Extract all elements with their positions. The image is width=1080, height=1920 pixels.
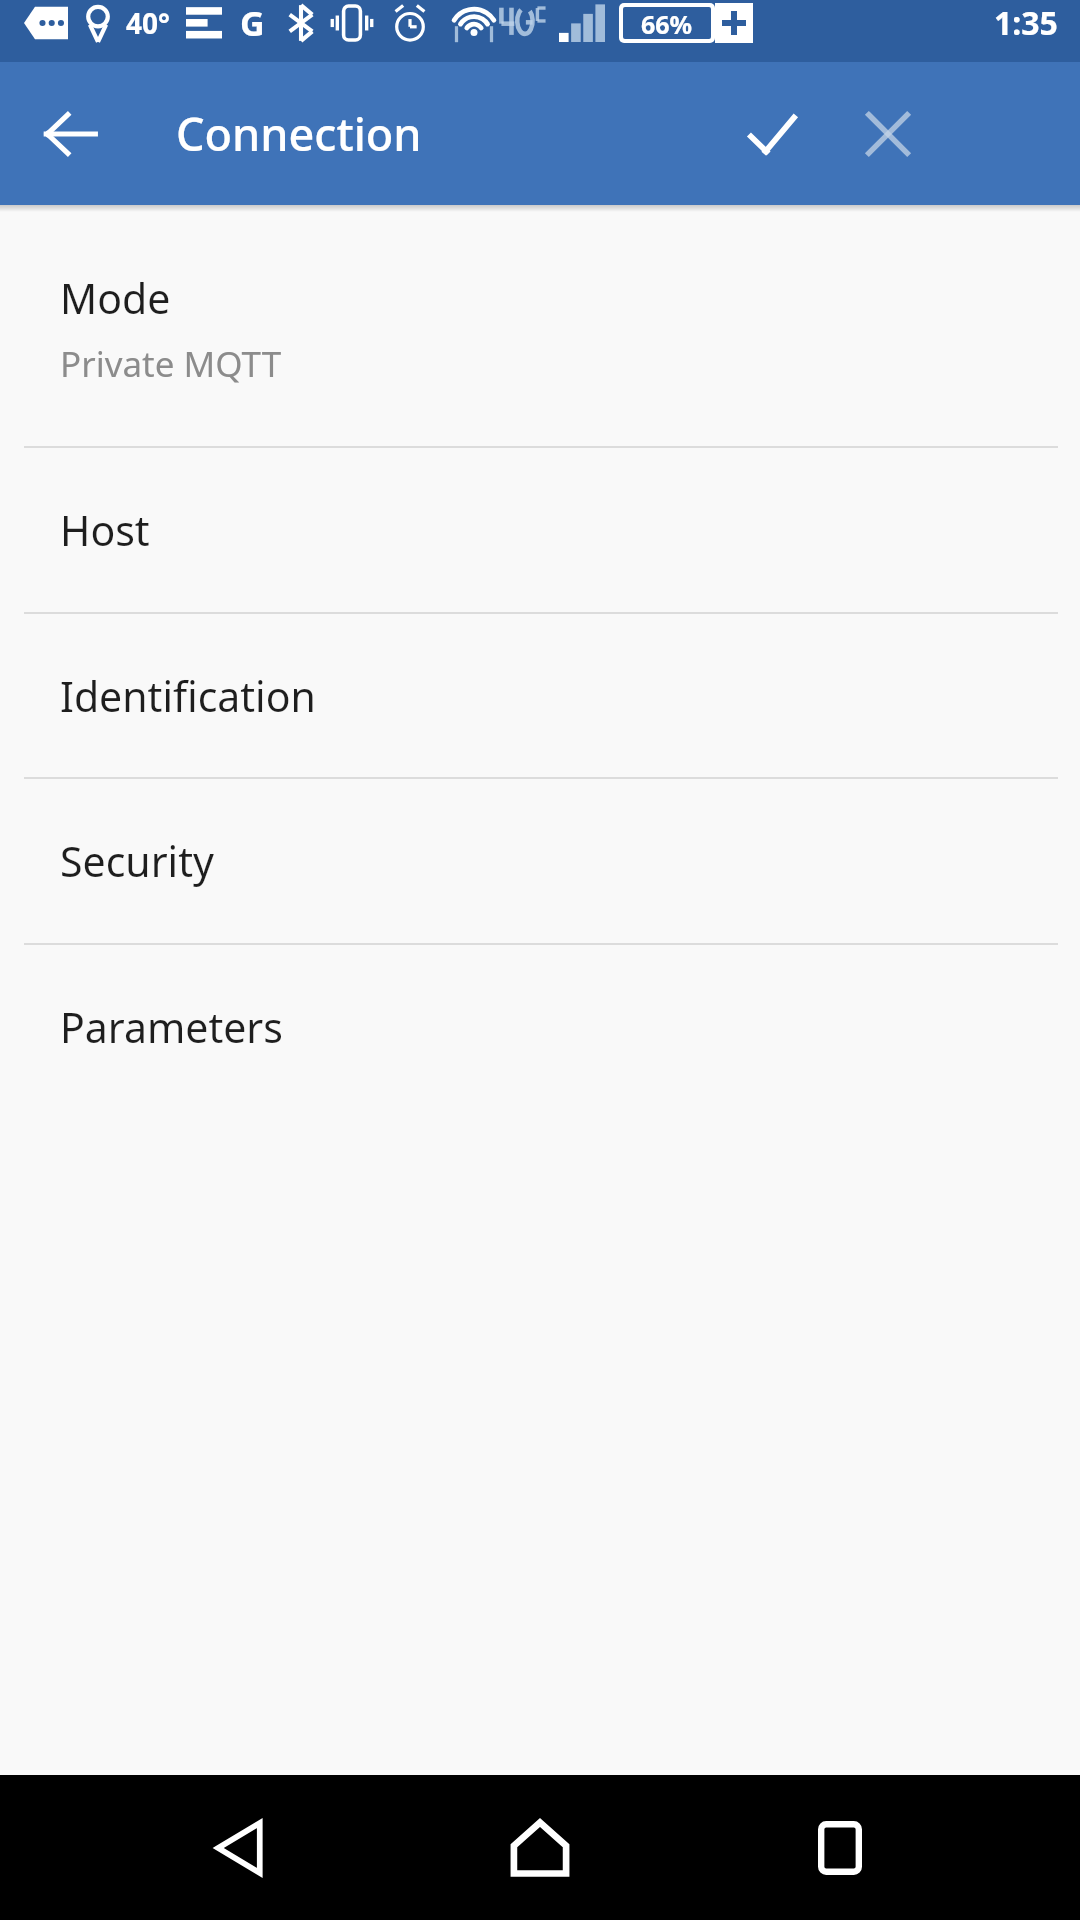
- button[interactable]: Back: [168, 1776, 312, 1920]
- staticText: 40°: [126, 4, 170, 42]
- staticText: Mode: [60, 270, 171, 326]
- button[interactable]: Recent apps: [768, 1776, 912, 1920]
- staticText: Security: [60, 833, 214, 889]
- button[interactable]: Save: [722, 84, 822, 184]
- button[interactable]: Cancel: [838, 84, 938, 184]
- staticText: Connection: [176, 103, 422, 164]
- staticText: Identification: [60, 668, 316, 724]
- staticText: Parameters: [60, 999, 283, 1055]
- button[interactable]: Home: [468, 1776, 612, 1920]
- staticText: G: [240, 0, 265, 46]
- button[interactable]: Back: [22, 86, 118, 182]
- button[interactable]: Mode: [0, 212, 1080, 446]
- button[interactable]: Security: [0, 779, 1080, 943]
- staticText: 66%: [641, 7, 693, 39]
- staticText: Host: [60, 502, 150, 558]
- staticText: Private MQTT: [60, 340, 282, 388]
- staticText: 1:35: [994, 1, 1058, 45]
- button[interactable]: Parameters: [0, 945, 1080, 1109]
- button[interactable]: Identification: [0, 614, 1080, 777]
- button[interactable]: Host: [0, 448, 1080, 612]
